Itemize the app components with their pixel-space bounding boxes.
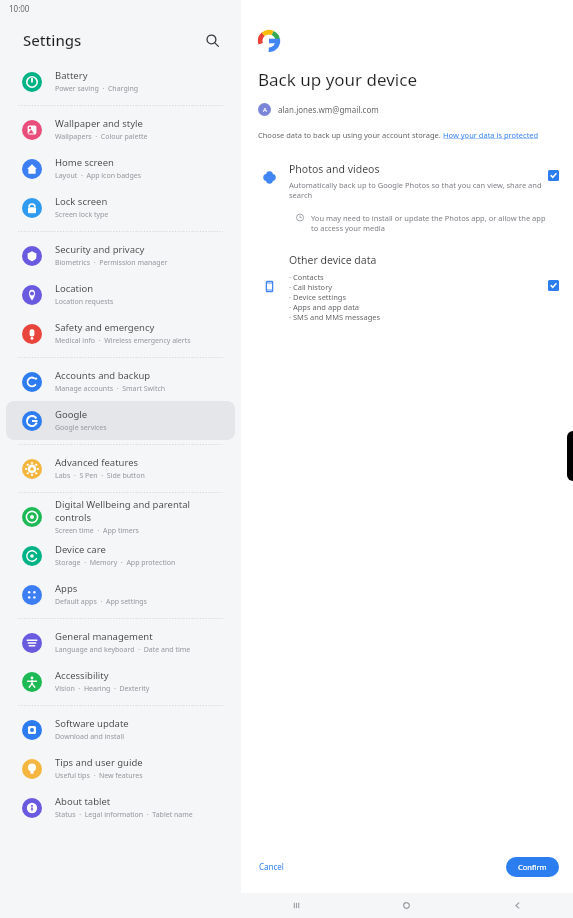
button[interactable]: Apps <box>6 575 235 614</box>
staticText: Screen lock type <box>55 210 109 220</box>
button[interactable]: Security and privacy <box>6 236 235 275</box>
staticText: Advanced features <box>55 456 139 469</box>
staticText: A <box>263 106 267 114</box>
staticText: Wallpapers · Colour palette <box>55 132 148 142</box>
button[interactable]: Location <box>6 275 235 314</box>
staticText: Status · Legal information · Tablet name <box>55 810 193 820</box>
button[interactable]: Safety and emergency <box>6 314 235 353</box>
staticText: Automatically back up to Google Photos s… <box>289 180 548 200</box>
staticText: Power saving · Charging <box>55 84 139 94</box>
staticText: Location <box>55 282 94 295</box>
button[interactable]: Checked <box>548 170 559 181</box>
button[interactable]: Digital Wellbeing and parental controls <box>6 497 235 536</box>
staticText: General management <box>55 630 153 643</box>
staticText: Cancel <box>259 861 284 872</box>
staticText: Location requests <box>55 297 114 307</box>
staticText: Choose data to back up using your accoun… <box>258 130 443 140</box>
button[interactable]: Tips and user guide <box>6 749 235 788</box>
button[interactable]: Accessibility <box>6 662 235 701</box>
button[interactable]: Back <box>462 893 573 918</box>
staticText: Labs · S Pen · Side button <box>55 471 145 481</box>
staticText: · Apps and app data <box>289 302 360 312</box>
button[interactable]: Wallpaper and style <box>6 110 235 149</box>
button[interactable]: Other device data <box>241 253 573 322</box>
staticText: Accounts and backup <box>55 369 151 382</box>
staticText: Download and install <box>55 732 125 742</box>
button[interactable]: Lock screen <box>6 188 235 227</box>
button[interactable]: Advanced features <box>6 449 235 488</box>
button[interactable]: Google <box>6 401 235 440</box>
staticText: · Contacts <box>289 272 324 282</box>
staticText: Useful tips · New features <box>55 771 143 781</box>
staticText: · SMS and MMS messages <box>289 312 381 322</box>
staticText: Software update <box>55 717 129 730</box>
staticText: About tablet <box>55 795 111 808</box>
staticText: Other device data <box>289 253 377 267</box>
button[interactable]: Cancel <box>255 858 288 875</box>
button[interactable]: Confirm <box>506 857 559 877</box>
button[interactable]: Photos and videos <box>241 162 573 233</box>
staticText: Layout · App icon badges <box>55 171 142 181</box>
staticText: Photos and videos <box>289 162 380 176</box>
staticText: Accessibility <box>55 669 109 682</box>
staticText: Battery <box>55 69 88 82</box>
staticText: Medical info · Wireless emergency alerts <box>55 336 191 346</box>
button[interactable]: Battery <box>6 62 235 101</box>
button[interactable]: Home screen <box>6 149 235 188</box>
staticText: Storage · Memory · App protection <box>55 558 176 568</box>
button[interactable]: Device care <box>6 536 235 575</box>
staticText: Home screen <box>55 156 114 169</box>
staticText: Google <box>55 408 88 421</box>
staticText: Digital Wellbeing and parental controls <box>55 498 225 524</box>
staticText: · Device settings <box>289 292 347 302</box>
staticText: Safety and emergency <box>55 321 155 334</box>
staticText: Language and keyboard · Date and time <box>55 645 191 655</box>
staticText: Google services <box>55 423 107 433</box>
button[interactable]: Software update <box>6 710 235 749</box>
staticText: Apps <box>55 582 78 595</box>
staticText: 10:00 <box>9 3 30 14</box>
button[interactable]: Home <box>351 893 462 918</box>
button[interactable]: How your data is protected <box>443 130 539 140</box>
button[interactable]: Checked <box>548 280 559 291</box>
staticText: Screen time · App timers <box>55 526 139 536</box>
staticText: · Call history <box>289 282 333 292</box>
staticText: Confirm <box>518 862 547 872</box>
staticText: Lock screen <box>55 195 108 208</box>
staticText: Biometrics · Permission manager <box>55 258 168 268</box>
staticText: Tips and user guide <box>55 756 143 769</box>
button[interactable]: Accounts and backup <box>6 362 235 401</box>
button[interactable]: About tablet <box>6 788 235 827</box>
staticText: Settings <box>23 30 82 50</box>
staticText: Default apps · App settings <box>55 597 147 607</box>
button[interactable]: A <box>258 103 379 116</box>
staticText: Vision · Hearing · Dexterity <box>55 684 150 694</box>
staticText: Security and privacy <box>55 243 145 256</box>
staticText: Device care <box>55 543 106 556</box>
button[interactable]: General management <box>6 623 235 662</box>
staticText: Manage accounts · Smart Switch <box>55 384 166 394</box>
staticText: You may need to install or update the Ph… <box>311 213 548 233</box>
staticText: Back up your device <box>258 68 418 91</box>
staticText: alan.jones.wm@gmail.com <box>278 104 379 115</box>
staticText: Wallpaper and style <box>55 117 143 130</box>
button[interactable]: Search <box>199 27 225 53</box>
button[interactable]: Recents <box>241 893 351 918</box>
